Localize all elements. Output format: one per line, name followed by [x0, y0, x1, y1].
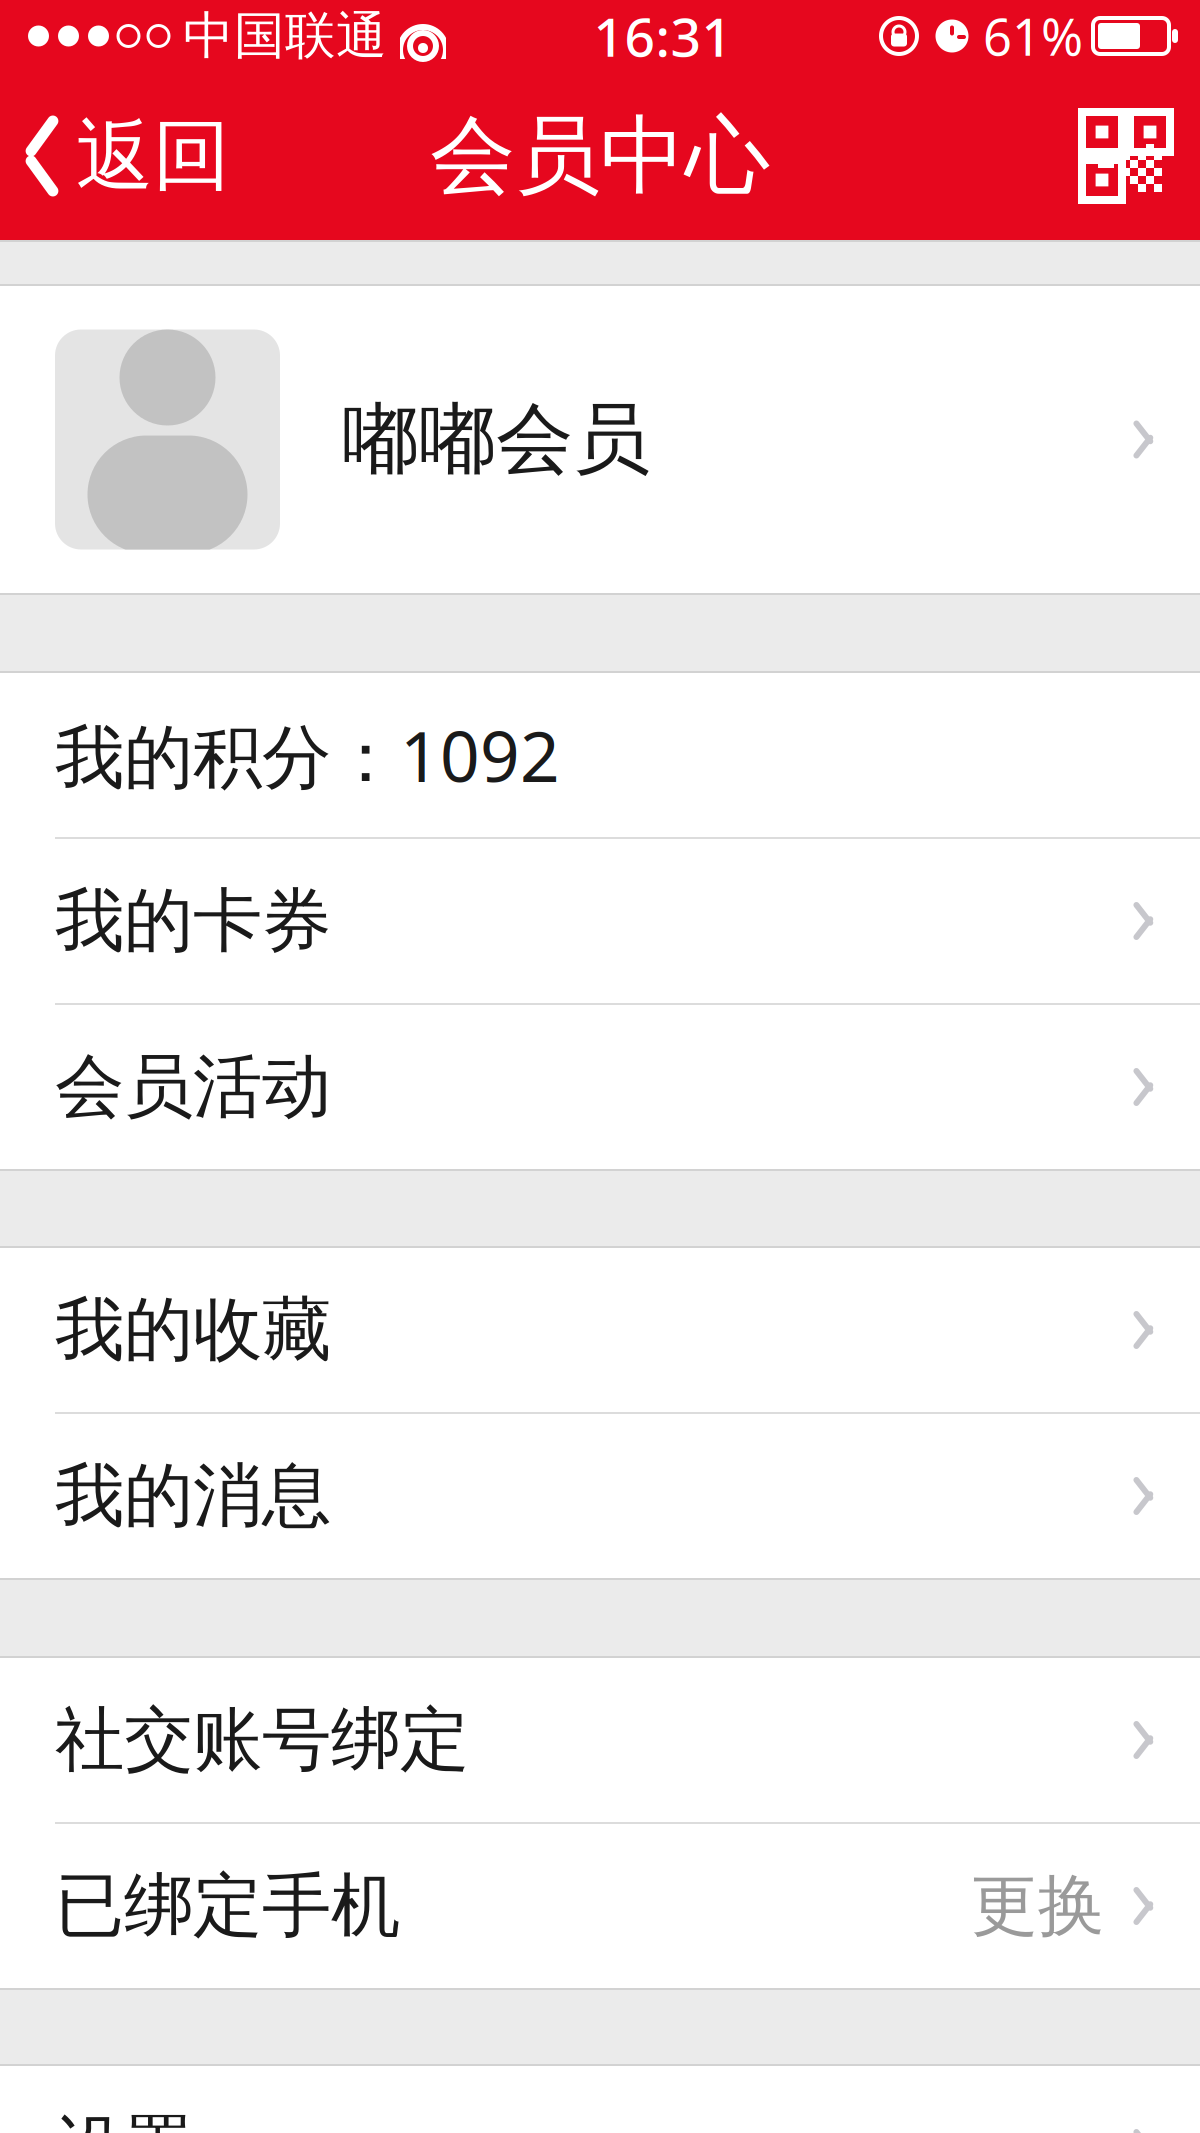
- button[interactable]: 我的收藏: [0, 1248, 1200, 1412]
- button[interactable]: 扫描二维码: [1052, 88, 1200, 224]
- staticText: 中国联通: [183, 5, 387, 67]
- button[interactable]: 设置: [0, 2066, 1200, 2133]
- staticText: 已绑定手机: [55, 1863, 400, 1949]
- button[interactable]: 我的积分：1092: [0, 673, 1200, 837]
- staticText: 会员活动: [55, 1044, 331, 1130]
- staticText: 社交账号绑定: [55, 1697, 469, 1783]
- staticText: 我的消息: [55, 1453, 331, 1539]
- button[interactable]: 我的消息: [0, 1414, 1200, 1578]
- staticText: 设置: [55, 2105, 193, 2133]
- staticText: 会员中心: [430, 104, 770, 208]
- staticText: 16:31: [593, 1, 732, 71]
- staticText: 我的卡券: [55, 878, 331, 964]
- staticText: 更换: [971, 1865, 1105, 1947]
- staticText: 我的积分：1092: [55, 709, 560, 801]
- button[interactable]: 已绑定手机: [0, 1824, 1200, 1988]
- button[interactable]: 我的卡券: [0, 839, 1200, 1003]
- staticText: 嘟嘟会员: [342, 392, 650, 487]
- button[interactable]: 嘟嘟会员: [0, 286, 1200, 593]
- staticText: 61%: [983, 2, 1083, 70]
- staticText: 返回: [76, 108, 230, 203]
- staticText: 我的收藏: [55, 1287, 331, 1373]
- button[interactable]: 会员活动: [0, 1005, 1200, 1169]
- button[interactable]: 返回: [0, 90, 230, 221]
- button[interactable]: 社交账号绑定: [0, 1658, 1200, 1822]
